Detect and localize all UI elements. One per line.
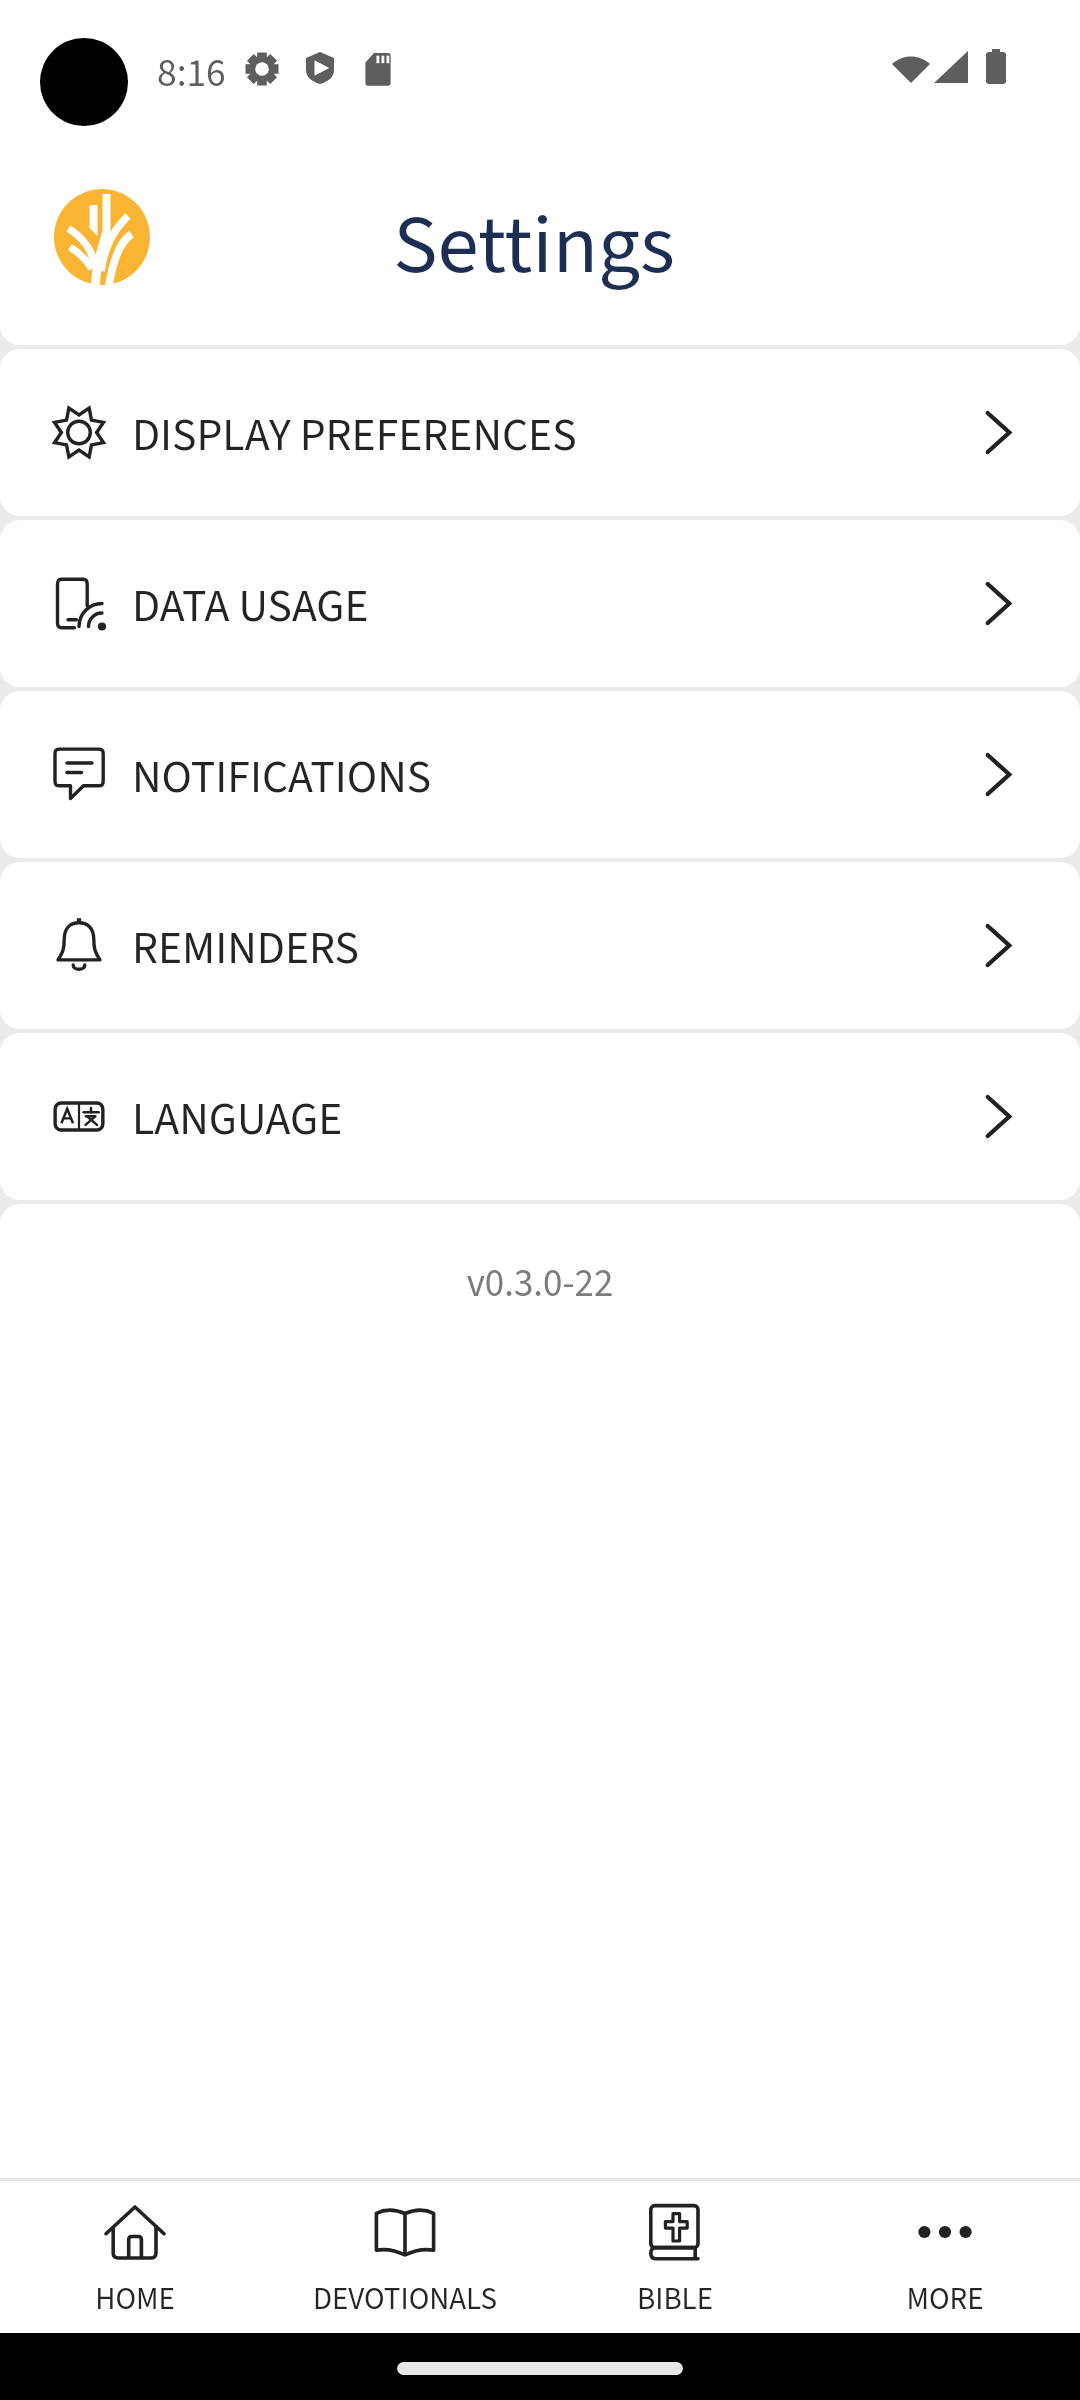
staticText: HOME xyxy=(0,2277,270,2321)
staticText: REMINDERS xyxy=(132,916,359,981)
staticText: LANGUAGE xyxy=(132,1087,343,1152)
button[interactable]: DEVOTIONALS xyxy=(270,2178,540,2333)
staticText: NOTIFICATIONS xyxy=(132,745,432,810)
staticText: 8:16 xyxy=(157,46,226,102)
button[interactable]: DISPLAY PREFERENCES xyxy=(0,349,1080,516)
staticText: v0.3.0-22 xyxy=(0,1256,1080,1312)
staticText: DEVOTIONALS xyxy=(270,2277,540,2321)
button[interactable]: MORE xyxy=(810,2178,1080,2333)
button[interactable]: HOME xyxy=(0,2178,270,2333)
button[interactable]: LANGUAGE xyxy=(0,1033,1080,1200)
staticText: BIBLE xyxy=(540,2277,810,2321)
staticText: DISPLAY PREFERENCES xyxy=(132,403,577,468)
staticText: MORE xyxy=(810,2277,1080,2321)
button[interactable]: DATA USAGE xyxy=(0,520,1080,687)
button[interactable]: BIBLE xyxy=(540,2178,810,2333)
button[interactable]: NOTIFICATIONS xyxy=(0,691,1080,858)
staticText: DATA USAGE xyxy=(132,574,369,639)
staticText: Settings xyxy=(0,187,1074,305)
button[interactable]: REMINDERS xyxy=(0,862,1080,1029)
